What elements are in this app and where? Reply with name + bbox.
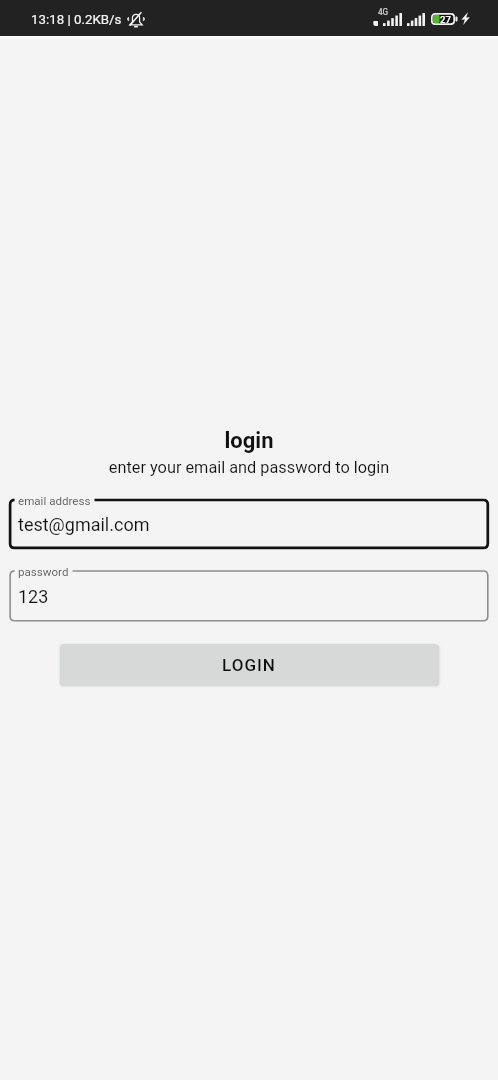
staticText: enter your email and password to login bbox=[0, 458, 498, 477]
other: Silent mode bbox=[127, 12, 145, 27]
staticText: 4G bbox=[378, 7, 389, 17]
button[interactable]: email address bbox=[0, 490, 498, 554]
button[interactable]: password bbox=[0, 561, 498, 627]
button[interactable]: LOGIN bbox=[60, 644, 438, 685]
staticText: test@gmail.com bbox=[18, 514, 150, 535]
staticText: login bbox=[0, 428, 498, 454]
staticText: password bbox=[18, 565, 69, 579]
staticText: 13:18 | 0.2KB/s bbox=[31, 12, 122, 28]
staticText: email address bbox=[18, 494, 91, 508]
staticText: 27 bbox=[440, 14, 451, 25]
staticText: 123 bbox=[18, 586, 49, 607]
other: Charging bbox=[461, 12, 470, 25]
staticText: LOGIN bbox=[222, 655, 276, 675]
